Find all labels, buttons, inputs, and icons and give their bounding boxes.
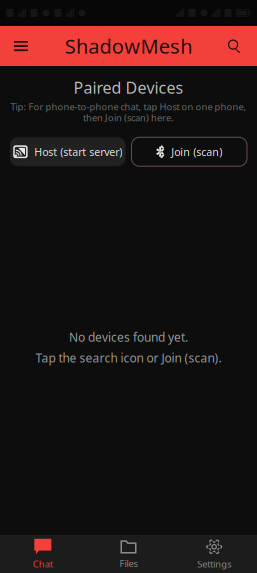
button[interactable]: Files [86, 534, 171, 573]
staticText: ShadowMesh [65, 33, 192, 59]
button[interactable]: Host (start server) [10, 137, 125, 166]
button[interactable]: Chat [0, 534, 86, 573]
staticText: then Join (scan) here. [83, 112, 174, 124]
staticText: Join (scan) [171, 145, 222, 159]
staticText: Paired Devices [73, 77, 183, 98]
button[interactable]: Menu [6, 26, 36, 66]
button[interactable]: Search [219, 26, 249, 66]
staticText: Settings [197, 558, 231, 570]
staticText: Chat [33, 558, 53, 570]
staticText: Tip: For phone-to-phone chat, tap Host o… [10, 101, 246, 113]
staticText: Host (start server) [34, 145, 122, 159]
staticText: Tap the search icon or Join (scan). [35, 350, 221, 366]
staticText: No devices found yet. [69, 329, 188, 345]
staticText: Files [119, 557, 137, 570]
button[interactable]: Join (scan) [131, 137, 247, 166]
button[interactable]: Settings [171, 534, 257, 573]
